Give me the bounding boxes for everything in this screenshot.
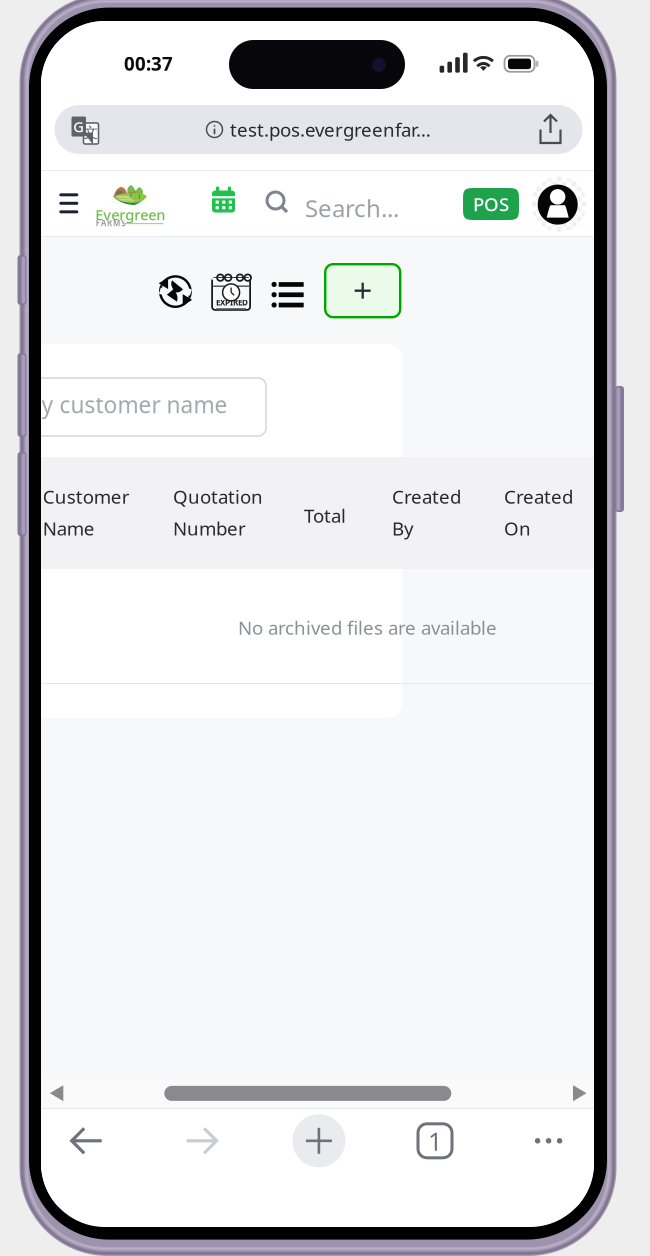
staticText: Customer: [43, 484, 130, 509]
button[interactable]: Search...: [254, 175, 444, 233]
staticText: POS: [473, 192, 509, 216]
button[interactable]: Tabs: [408, 1114, 462, 1168]
staticText: Number: [173, 516, 246, 541]
button[interactable]: New tab: [292, 1114, 346, 1168]
button[interactable]: Back: [60, 1114, 114, 1168]
staticText: test.pos.evergreenfar…: [230, 117, 431, 142]
button[interactable]: List view: [271, 282, 304, 308]
button[interactable]: Forward: [175, 1114, 229, 1168]
staticText: On: [504, 516, 531, 541]
button[interactable]: Account: [532, 177, 585, 231]
staticText: EXPIRED: [216, 297, 248, 308]
staticText: FARMS: [96, 218, 125, 228]
button[interactable]: Menu: [50, 184, 88, 222]
staticText: Total: [304, 503, 346, 528]
staticText: 文: [83, 123, 98, 141]
staticText: Evergreen: [95, 205, 165, 224]
button[interactable]: Expired items: [212, 274, 250, 310]
button[interactable]: Calendar: [212, 186, 235, 212]
staticText: 1: [428, 1124, 442, 1158]
staticText: Name: [43, 516, 95, 541]
button[interactable]: Refresh: [158, 274, 193, 309]
button[interactable]: 文: [54, 105, 582, 154]
button[interactable]: Add quotation: [325, 264, 400, 317]
staticText: y customer name: [41, 389, 227, 419]
staticText: Search...: [305, 192, 399, 224]
button[interactable]: POS: [463, 188, 519, 220]
staticText: Created: [392, 484, 461, 509]
staticText: No archived files are available: [238, 615, 497, 640]
staticText: 00:37: [124, 51, 173, 76]
staticText: Quotation: [173, 484, 263, 509]
staticText: By: [392, 516, 414, 541]
button[interactable]: More: [522, 1114, 576, 1168]
staticText: Created: [504, 484, 573, 509]
staticText: G: [73, 117, 84, 136]
